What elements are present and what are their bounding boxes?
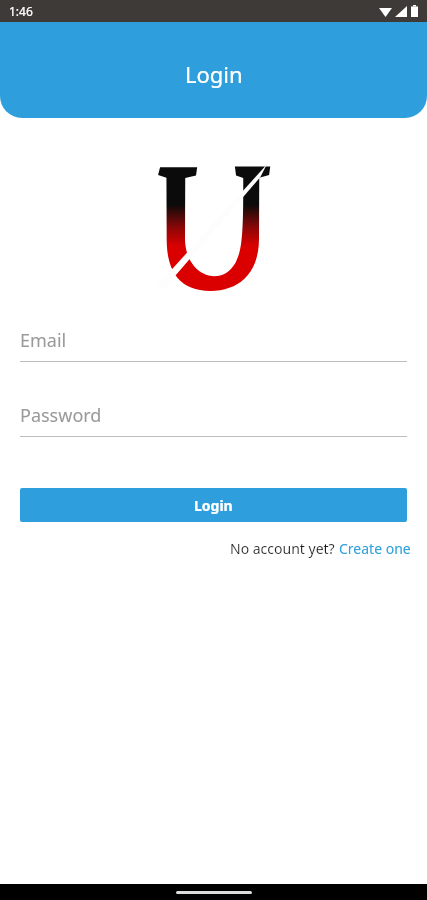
staticText: 1:46 <box>9 3 33 19</box>
button[interactable]: Email <box>20 328 407 362</box>
button[interactable]: Password <box>20 403 407 437</box>
button[interactable]: Create one <box>339 539 411 558</box>
staticText: Login <box>194 496 233 515</box>
staticText: Password <box>20 403 102 428</box>
other: Navigation bar <box>0 884 427 900</box>
staticText: Login <box>185 59 243 89</box>
staticText: Create one <box>339 539 411 558</box>
staticText: No account yet? <box>230 539 339 558</box>
staticText: Email <box>20 328 67 353</box>
button[interactable]: Login <box>20 488 407 522</box>
